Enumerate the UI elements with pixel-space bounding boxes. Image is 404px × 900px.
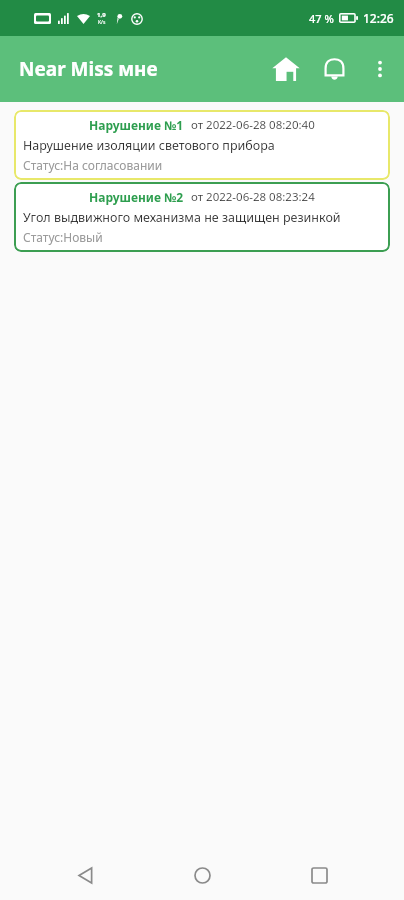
staticText: Статус:На согласовании: [23, 157, 163, 173]
staticText: K/s: [98, 19, 106, 26]
staticText: Near Miss мне: [19, 56, 158, 82]
button[interactable]: Нарушение №1: [14, 110, 390, 180]
staticText: от 2022-06-28 08:20:40: [191, 117, 315, 133]
staticText: Нарушение изоляции светового прибора: [23, 137, 275, 154]
button[interactable]: Home: [262, 45, 310, 93]
staticText: 12:26: [363, 10, 394, 26]
staticText: Нарушение №1: [89, 117, 184, 133]
button[interactable]: Нарушение №2: [14, 182, 390, 252]
button[interactable]: Recent apps: [287, 850, 351, 900]
button[interactable]: Notifications: [310, 45, 358, 93]
staticText: Статус:Новый: [23, 229, 103, 245]
staticText: от 2022-06-28 08:23:24: [191, 189, 315, 205]
staticText: Нарушение №2: [89, 189, 184, 205]
staticText: 1,9: [97, 11, 106, 19]
staticText: Угол выдвижного механизма не защищен рез…: [23, 209, 341, 226]
button[interactable]: Back: [53, 850, 117, 900]
button[interactable]: Home: [170, 850, 234, 900]
button[interactable]: More options: [358, 47, 402, 91]
staticText: 47 %: [309, 11, 334, 26]
